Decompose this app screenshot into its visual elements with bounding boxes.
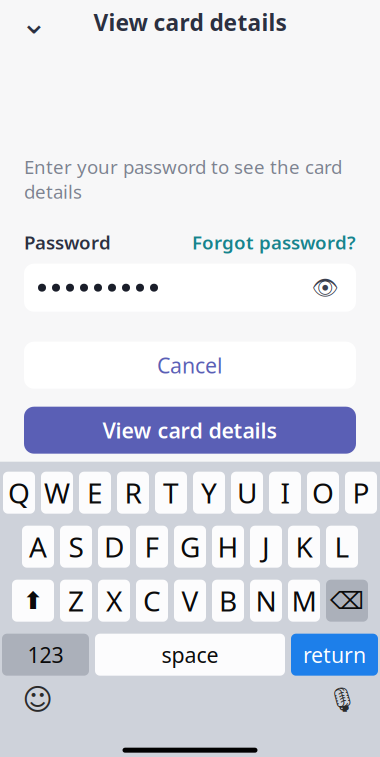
staticText: X [106, 582, 122, 619]
staticText: N [255, 582, 276, 619]
staticText: G [180, 528, 200, 565]
button[interactable]: Emoji [18, 680, 58, 720]
staticText: V [181, 582, 198, 619]
button[interactable]: Y [193, 472, 225, 514]
staticText: Enter your password to see the card deta… [24, 154, 342, 204]
button[interactable]: T [155, 472, 187, 514]
staticText: return [303, 640, 366, 669]
button[interactable]: J [250, 526, 282, 568]
staticText: Q [8, 474, 30, 511]
staticText: View card details [93, 7, 286, 37]
button[interactable]: 123 [2, 634, 89, 676]
button[interactable]: View card details [24, 407, 356, 454]
button[interactable]: F [136, 526, 168, 568]
button[interactable]: G [174, 526, 206, 568]
button[interactable]: space [95, 634, 285, 676]
staticText: Z [68, 582, 84, 619]
button[interactable]: E [79, 472, 111, 514]
staticText: Forgot password? [192, 230, 356, 255]
staticText: A [29, 528, 47, 565]
staticText: S [68, 528, 83, 565]
staticText: ⌫ [330, 587, 364, 614]
staticText: ☺ [22, 683, 53, 716]
button[interactable]: Cancel [24, 342, 356, 389]
button[interactable]: Dictation [322, 680, 362, 720]
button[interactable]: N [250, 580, 282, 622]
staticText: D [104, 528, 124, 565]
staticText: ⌄ [20, 4, 47, 40]
staticText: Password [24, 230, 111, 255]
staticText: B [219, 582, 237, 619]
staticText: F [144, 528, 159, 565]
button[interactable]: V [174, 580, 206, 622]
staticText: J [262, 528, 270, 565]
button[interactable]: O [307, 472, 339, 514]
staticText: space [161, 640, 218, 669]
button[interactable]: C [136, 580, 168, 622]
button[interactable]: Q [3, 472, 35, 514]
button[interactable]: R [117, 472, 149, 514]
button[interactable]: Z [60, 580, 92, 622]
button[interactable]: W [41, 472, 73, 514]
staticText: L [334, 528, 349, 565]
button[interactable]: D [98, 526, 130, 568]
staticText: 123 [27, 640, 63, 669]
button[interactable]: A [22, 526, 54, 568]
staticText: H [217, 528, 238, 565]
button[interactable]: M [288, 580, 320, 622]
button[interactable]: X [98, 580, 130, 622]
button[interactable]: K [288, 526, 320, 568]
staticText: 👁 [311, 275, 338, 300]
staticText: ⬆ [23, 587, 43, 614]
button[interactable]: L [326, 526, 358, 568]
button[interactable]: Close [12, 0, 56, 44]
button[interactable]: Delete [326, 580, 368, 622]
staticText: K [295, 528, 312, 565]
staticText: Y [201, 474, 217, 511]
staticText: P [352, 474, 369, 511]
staticText: O [312, 474, 334, 511]
staticText: Cancel [157, 351, 223, 379]
staticText: U [237, 474, 257, 511]
button[interactable]: Show password [308, 271, 342, 305]
button[interactable]: I [269, 472, 301, 514]
staticText: R [124, 474, 141, 511]
button[interactable]: Shift [12, 580, 54, 622]
staticText: T [163, 474, 179, 511]
button[interactable]: return [291, 634, 378, 676]
button[interactable]: U [231, 472, 263, 514]
button[interactable]: B [212, 580, 244, 622]
button[interactable]: Forgot password? [192, 230, 356, 255]
staticText: I [280, 474, 289, 511]
staticText: View card details [102, 416, 277, 444]
staticText: W [44, 474, 70, 511]
staticText: E [87, 474, 103, 511]
staticText: M [291, 582, 316, 619]
staticText: C [143, 582, 161, 619]
button[interactable]: P [345, 472, 377, 514]
staticText: 🎙 [327, 686, 357, 713]
button[interactable]: S [60, 526, 92, 568]
button[interactable]: H [212, 526, 244, 568]
